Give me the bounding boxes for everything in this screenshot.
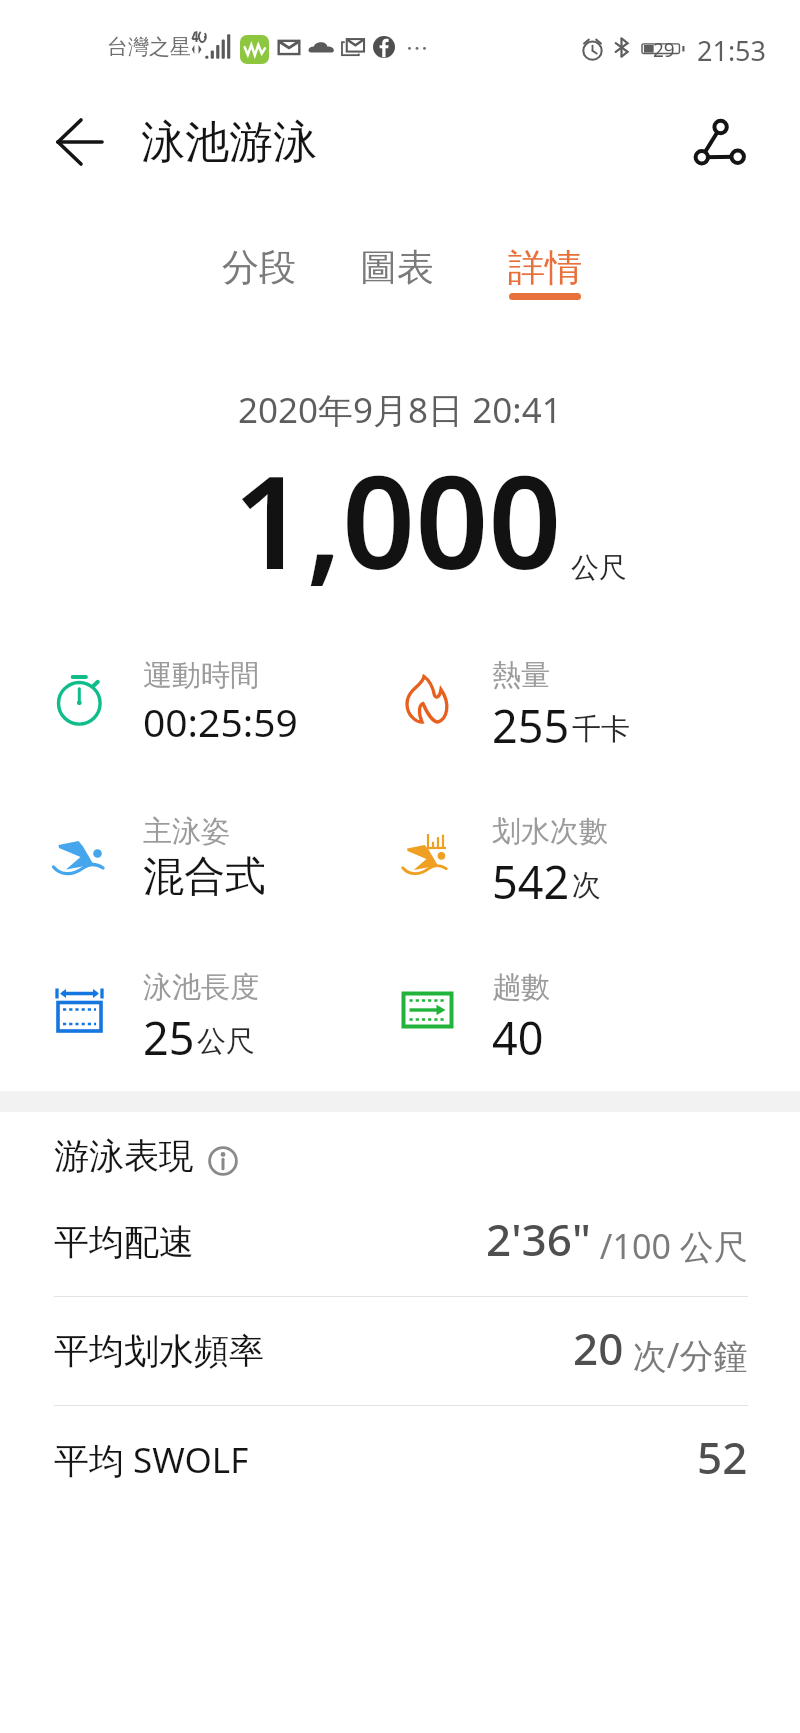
button[interactable]: 平均划水頻率 (0, 1297, 800, 1406)
button[interactable]: 圖表 (358, 244, 436, 300)
staticText: /100 公尺 (591, 1223, 748, 1269)
staticText: 平均 SWOLF (54, 1436, 249, 1484)
staticText: 圖表 (360, 244, 434, 291)
staticText: 划水次數 (492, 813, 608, 850)
staticText: 主泳姿 (143, 813, 230, 850)
staticText: 542 (492, 851, 570, 912)
button[interactable]: Info (208, 1146, 238, 1176)
staticText: 29 (653, 37, 675, 58)
button[interactable]: 平均 SWOLF (0, 1406, 800, 1514)
staticText: 游泳表現 (54, 1134, 194, 1178)
staticText: 運動時間 (143, 657, 259, 694)
staticText: 公尺 (197, 1023, 255, 1060)
staticText: 平均配速 (54, 1220, 194, 1264)
staticText: 泳池游泳 (141, 115, 317, 170)
staticText: 熱量 (492, 657, 550, 694)
staticText: 40 (492, 1007, 544, 1068)
staticText: 52 (697, 1427, 748, 1487)
staticText: 20 (573, 1318, 624, 1378)
staticText: 公尺 (571, 550, 627, 585)
staticText: 分段 (222, 244, 296, 291)
staticText: 2020年9月8日 20:41 (238, 386, 562, 434)
staticText: 趟數 (492, 969, 550, 1006)
button[interactable]: 詳情 (506, 244, 584, 300)
staticText: 千卡 (572, 711, 630, 748)
staticText: 00:25:59 (143, 695, 298, 748)
button[interactable]: Back (46, 110, 114, 178)
staticText: 25 (143, 1007, 195, 1068)
staticText: 2'36" (486, 1209, 591, 1269)
staticText: 21:53 (697, 32, 767, 69)
staticText: 次 (572, 867, 601, 904)
button[interactable]: Share (684, 106, 756, 178)
staticText: 255 (492, 695, 570, 756)
staticText: 混合式 (143, 851, 266, 903)
staticText: 詳情 (508, 244, 582, 291)
staticText: 平均划水頻率 (54, 1329, 264, 1373)
button[interactable]: 分段 (220, 244, 298, 300)
staticText: 1,000 (233, 432, 562, 606)
staticText: 台灣之星 (107, 34, 191, 60)
staticText: 次/分鐘 (624, 1332, 748, 1378)
staticText: 泳池長度 (143, 969, 259, 1006)
button[interactable]: 平均配速 (0, 1188, 800, 1297)
